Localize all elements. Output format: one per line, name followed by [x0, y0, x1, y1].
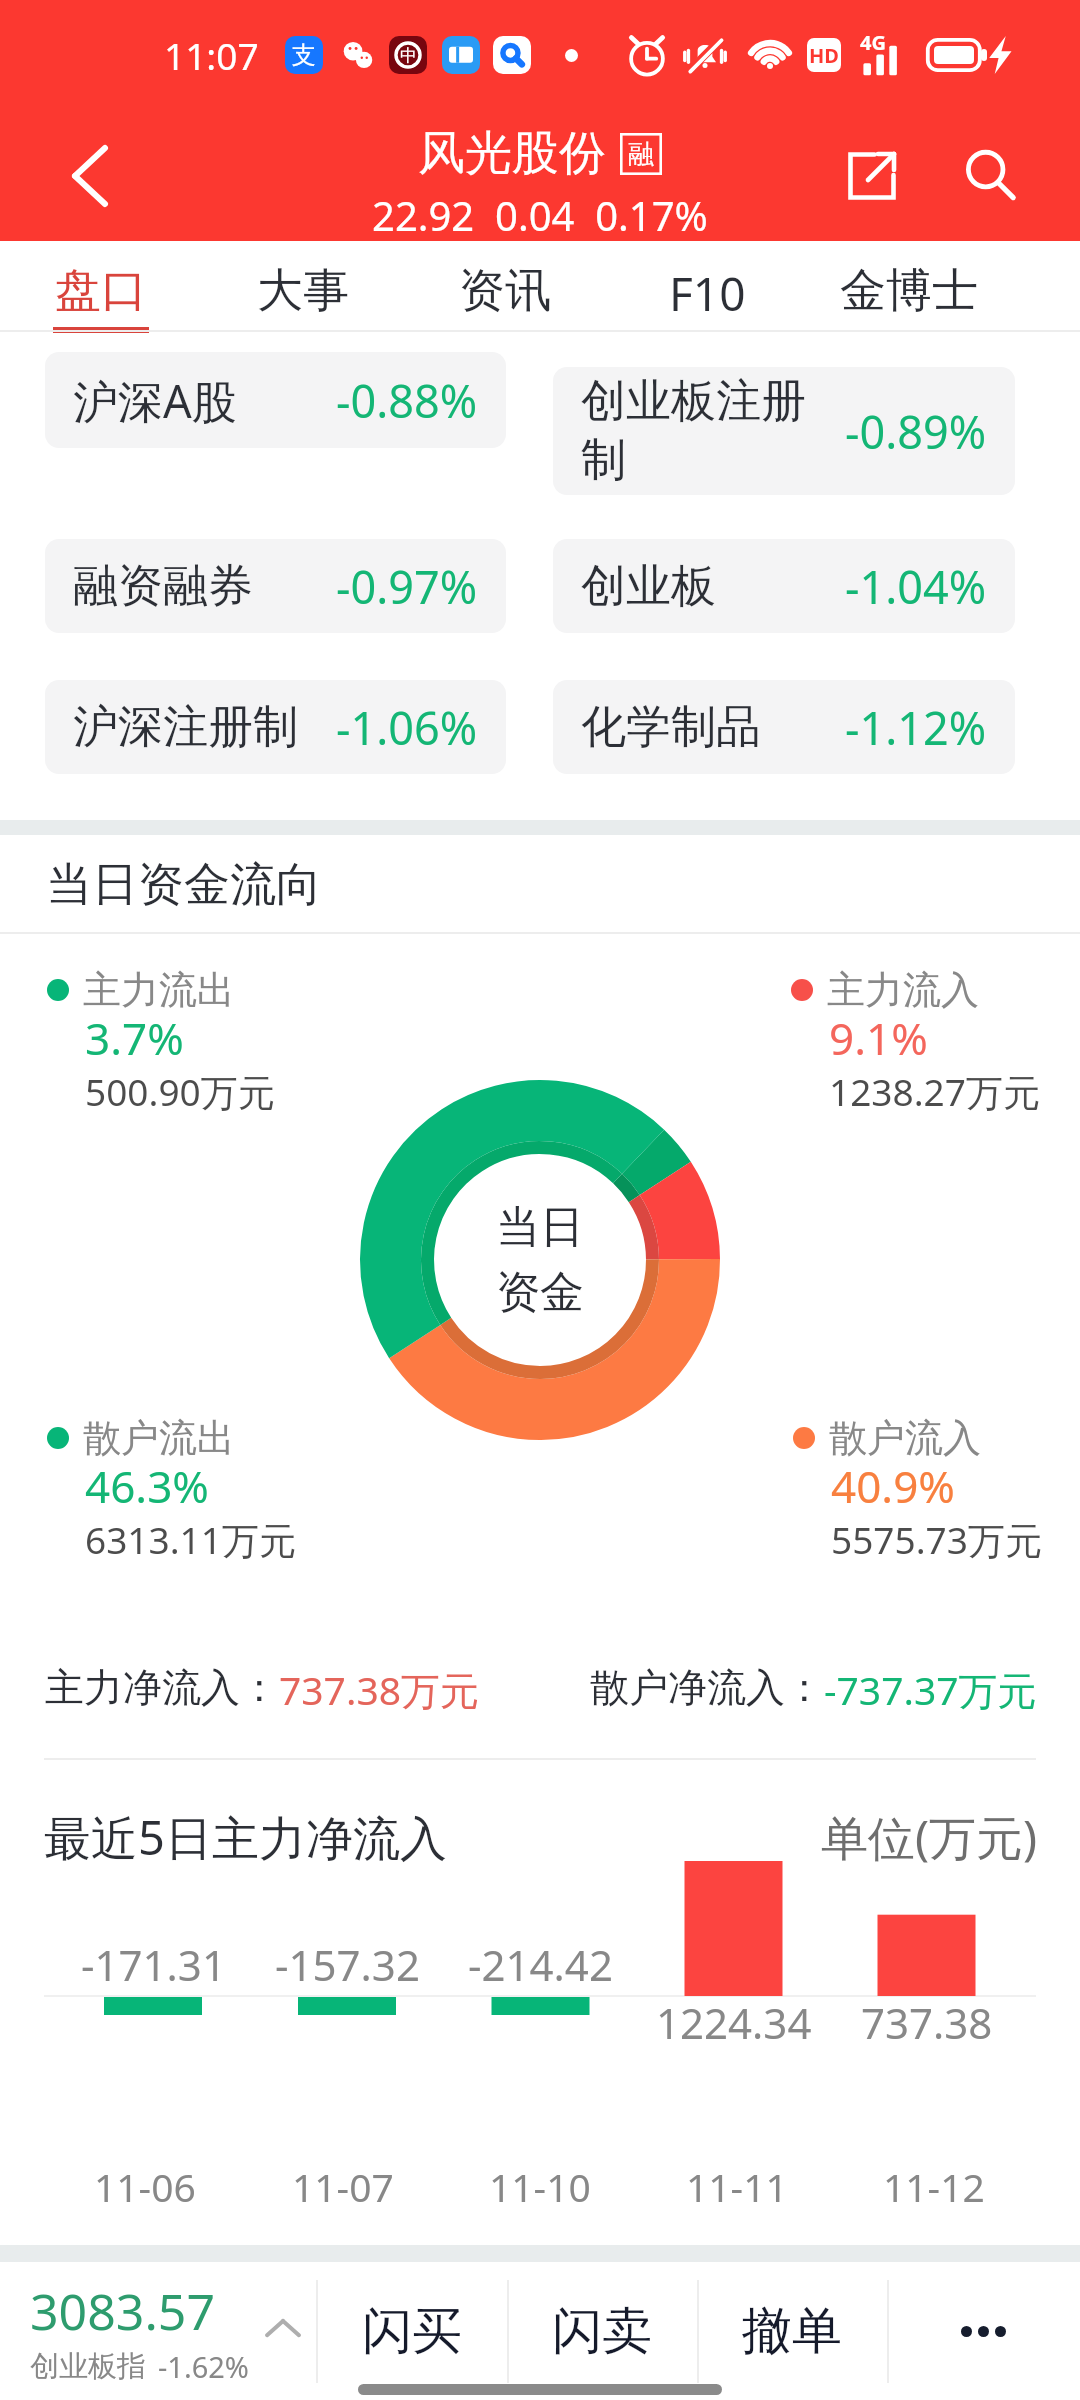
staticText: 沪深A股: [73, 370, 237, 431]
button[interactable]: 沪深注册制: [45, 680, 506, 774]
staticText: 4G: [860, 29, 886, 56]
staticText: 3.7%: [85, 1008, 184, 1068]
staticText: -0.89%: [845, 401, 987, 462]
staticText: 11:07: [164, 30, 259, 80]
button[interactable]: 撤单: [697, 2262, 887, 2400]
staticText: 融资融券: [73, 558, 253, 615]
staticText: 闪买: [362, 2300, 462, 2363]
staticText: 1224.34: [656, 1994, 812, 2051]
staticText: 金博士: [840, 262, 978, 320]
button[interactable]: 闪买: [316, 2262, 507, 2400]
staticText: 化学制品: [581, 699, 761, 756]
staticText: -737.37万元: [824, 1663, 1037, 1716]
staticText: 散户流出: [83, 1414, 235, 1462]
staticText: F10: [669, 262, 746, 325]
staticText: 大事: [257, 262, 349, 320]
staticText: -0.88%: [336, 370, 478, 431]
button[interactable]: 资讯: [404, 241, 606, 332]
staticText: 当日资金流向: [46, 856, 322, 914]
staticText: 撤单: [742, 2300, 842, 2363]
staticText: 闪卖: [552, 2300, 652, 2363]
staticText: 当日: [496, 1200, 584, 1255]
staticText: 创业板: [581, 558, 716, 615]
button[interactable]: 沪深A股: [45, 352, 506, 448]
staticText: 风光股份: [418, 124, 606, 183]
staticText: 11-06: [94, 2160, 196, 2213]
staticText: 最近5日主力净流入: [44, 1805, 447, 1869]
staticText: 散户净流入：: [590, 1663, 824, 1712]
staticText: 11-11: [686, 2160, 788, 2213]
staticText: 40.9%: [831, 1456, 955, 1516]
staticText: -0.97%: [336, 556, 478, 617]
staticText: 737.38万元: [279, 1663, 479, 1716]
staticText: -1.04%: [845, 556, 987, 617]
staticText: 沪深注册制: [73, 699, 298, 756]
button[interactable]: 闪卖: [507, 2262, 697, 2400]
staticText: 支: [292, 40, 316, 70]
staticText: 资金: [496, 1265, 584, 1320]
button[interactable]: 盘口: [0, 241, 202, 332]
staticText: 46.3%: [85, 1456, 209, 1516]
staticText: -214.42: [468, 1936, 613, 1993]
button[interactable]: 创业板: [553, 539, 1015, 633]
staticText: -171.31: [81, 1936, 226, 1993]
staticText: 创业板指: [30, 2348, 146, 2385]
staticText: 22.92 0.04 0.17%: [372, 188, 708, 242]
button[interactable]: 融资融券: [45, 539, 506, 633]
staticText: 单位(万元): [821, 1805, 1038, 1869]
staticText: 主力净流入：: [45, 1663, 279, 1712]
staticText: HD: [809, 42, 839, 69]
staticText: -157.32: [275, 1936, 420, 1993]
staticText: 9.1%: [829, 1008, 928, 1068]
staticText: 融: [628, 138, 654, 171]
staticText: 11-07: [292, 2160, 394, 2213]
button[interactable]: 化学制品: [553, 680, 1015, 774]
staticText: 3083.57: [30, 2277, 215, 2345]
staticText: -1.06%: [336, 697, 478, 758]
button[interactable]: Search: [940, 116, 1040, 236]
staticText: 主力流入: [827, 966, 979, 1014]
staticText: 1238.27万元: [829, 1066, 1040, 1117]
staticText: 主力流出: [83, 966, 235, 1014]
staticText: -1.62%: [158, 2347, 249, 2386]
staticText: 5575.73万元: [831, 1514, 1042, 1565]
staticText: 500.90万元: [85, 1066, 275, 1117]
staticText: 11-12: [883, 2160, 985, 2213]
button[interactable]: 创业板注册: [553, 367, 1015, 495]
staticText: -1.12%: [845, 697, 987, 758]
button[interactable]: 金博士: [808, 241, 1010, 332]
staticText: 中: [400, 45, 417, 66]
staticText: 11-10: [489, 2160, 591, 2213]
staticText: 资讯: [459, 262, 551, 320]
staticText: 737.38: [861, 1994, 993, 2051]
button[interactable]: More: [887, 2262, 1080, 2400]
staticText: 创业板注册: [581, 373, 806, 430]
staticText: 盘口: [55, 262, 147, 320]
button[interactable]: Share: [804, 116, 940, 236]
button[interactable]: Back: [0, 110, 170, 241]
button[interactable]: Expand: [250, 2262, 316, 2400]
button[interactable]: 大事: [202, 241, 404, 332]
staticText: 制: [581, 432, 626, 489]
staticText: 散户流入: [829, 1414, 981, 1462]
button[interactable]: F10: [606, 241, 808, 332]
staticText: 6313.11万元: [85, 1514, 296, 1565]
